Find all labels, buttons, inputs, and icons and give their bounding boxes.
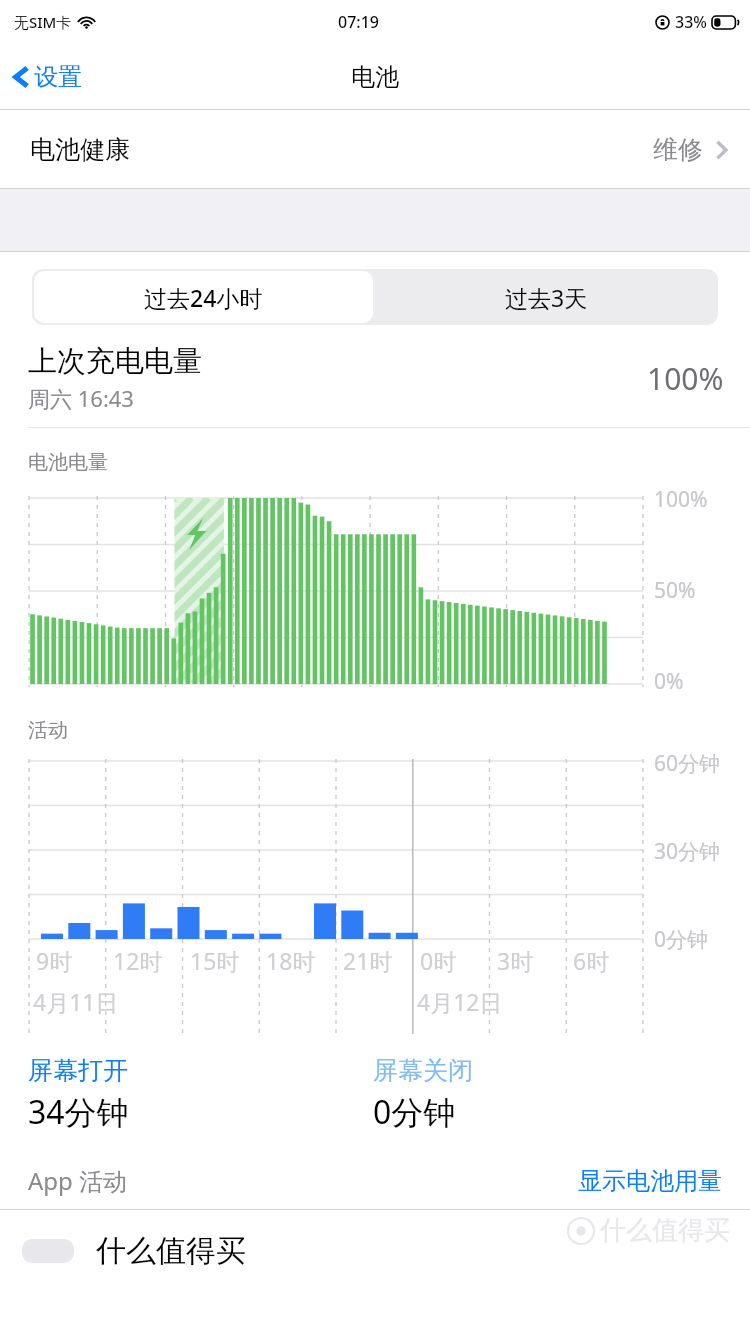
staticText: 100% xyxy=(654,485,708,514)
staticText: 07:19 xyxy=(338,11,379,33)
staticText: 4月11日 xyxy=(33,986,119,1017)
staticText: 6时 xyxy=(573,945,610,976)
other: Back xyxy=(10,61,32,93)
button[interactable]: 显示电池用量 xyxy=(578,1166,722,1196)
staticText: App 活动 xyxy=(28,1164,578,1197)
staticText: 18时 xyxy=(266,945,316,976)
staticText: 34分钟 xyxy=(28,1090,129,1134)
staticText: 0% xyxy=(654,667,684,696)
staticText: 什么值得买 xyxy=(600,1214,730,1247)
staticText: 过去24小时 xyxy=(144,282,263,313)
staticText: 无SIM卡 xyxy=(14,12,72,32)
staticText: 什么值得买 xyxy=(96,1232,246,1270)
button[interactable]: 电池健康 xyxy=(0,110,750,189)
button[interactable]: 过去3天 xyxy=(375,269,718,325)
staticText: 30分钟 xyxy=(654,837,721,866)
staticText: 21时 xyxy=(343,945,393,976)
staticText: 15时 xyxy=(190,945,240,976)
staticText: 屏幕打开 xyxy=(28,1055,128,1086)
staticText: 维修 xyxy=(653,134,703,165)
staticText: 3时 xyxy=(497,945,534,976)
staticText: 电池健康 xyxy=(30,134,130,165)
staticText: 过去3天 xyxy=(505,282,588,313)
staticText: 屏幕关闭 xyxy=(373,1055,473,1086)
staticText: 9时 xyxy=(36,945,73,976)
staticText: 0分钟 xyxy=(654,925,709,954)
staticText: 电池电量 xyxy=(28,450,108,475)
button[interactable]: 过去24小时 xyxy=(34,271,373,323)
staticText: 电池 xyxy=(351,62,399,92)
button[interactable]: Back xyxy=(10,61,82,93)
staticText: 0时 xyxy=(420,945,457,976)
staticText: 设置 xyxy=(34,62,82,92)
staticText: 50% xyxy=(654,576,696,605)
staticText: 12时 xyxy=(113,945,163,976)
staticText: 显示电池用量 xyxy=(578,1166,722,1196)
staticText: 上次充电电量 xyxy=(28,343,202,380)
staticText: 活动 xyxy=(28,718,68,743)
staticText: 100% xyxy=(647,358,724,399)
staticText: 33% xyxy=(675,11,707,33)
staticText: 60分钟 xyxy=(654,749,721,778)
staticText: 周六 16:43 xyxy=(28,383,134,413)
staticText: 0分钟 xyxy=(373,1090,456,1134)
staticText: 4月12日 xyxy=(417,986,503,1017)
